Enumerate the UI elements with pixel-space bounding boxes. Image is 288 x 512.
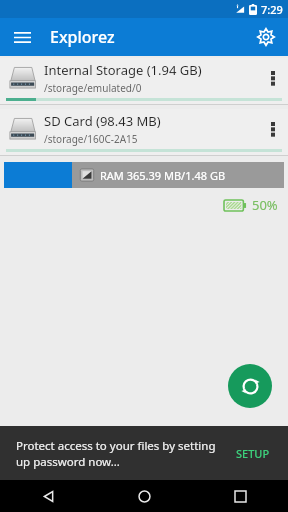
- button[interactable]: Back: [0, 480, 96, 512]
- button[interactable]: SD Card (98.43 MB): [0, 109, 288, 156]
- button[interactable]: Home: [96, 480, 192, 512]
- button[interactable]: More options: [258, 59, 288, 97]
- staticText: 7:29: [261, 2, 283, 17]
- button[interactable]: Refresh: [228, 364, 272, 408]
- staticText: Protect access to your files by setting …: [16, 438, 218, 469]
- button[interactable]: SETUP: [230, 440, 276, 467]
- button[interactable]: Recent apps: [192, 480, 288, 512]
- staticText: RAM 365.39 MB/1.48 GB: [100, 168, 226, 183]
- button[interactable]: Open navigation menu: [6, 21, 38, 53]
- staticText: /storage/160C-2A15: [44, 132, 138, 146]
- staticText: SETUP: [236, 446, 270, 461]
- button[interactable]: Internal Storage (1.94 GB): [0, 58, 288, 105]
- button[interactable]: Settings: [250, 21, 282, 53]
- staticText: SD Card (98.43 MB): [44, 112, 161, 130]
- button[interactable]: RAM 365.39 MB/1.48 GB: [4, 162, 284, 188]
- staticText: Internal Storage (1.94 GB): [44, 61, 202, 79]
- staticText: /storage/emulated/0: [44, 81, 142, 95]
- staticText: 50%: [252, 196, 278, 214]
- staticText: Explorez: [50, 26, 115, 48]
- button[interactable]: More options: [258, 110, 288, 148]
